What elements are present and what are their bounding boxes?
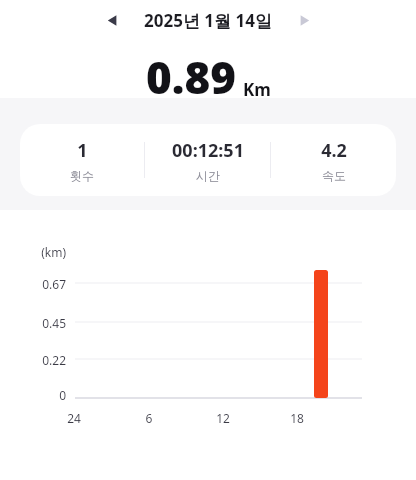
staticText: 18 xyxy=(285,410,309,426)
staticText: 0.45 xyxy=(8,315,66,331)
staticText: 00:12:51 xyxy=(172,138,244,163)
staticText: 6 xyxy=(137,410,161,426)
staticText: (km) xyxy=(8,244,66,260)
button[interactable]: Previous day xyxy=(97,5,127,35)
staticText: 0.67 xyxy=(8,276,66,292)
button[interactable]: 00:12:51 xyxy=(145,138,270,183)
button[interactable]: 1 xyxy=(20,138,144,183)
button[interactable]: 1 xyxy=(20,124,396,196)
staticText: 2025년 1월 14일 xyxy=(144,9,272,32)
staticText: 1 xyxy=(77,138,88,163)
staticText: 4.2 xyxy=(321,138,347,163)
button[interactable]: Next day xyxy=(289,5,319,35)
staticText: 시간 xyxy=(196,168,220,183)
button[interactable]: 4.2 xyxy=(271,138,396,183)
staticText: 0.89 xyxy=(146,47,237,107)
staticText: 0 xyxy=(8,387,66,403)
staticText: 횟수 xyxy=(70,168,94,183)
staticText: 12 xyxy=(211,410,235,426)
staticText: 24 xyxy=(62,410,86,426)
staticText: 속도 xyxy=(322,168,346,183)
staticText: Km xyxy=(243,78,271,101)
staticText: 0.22 xyxy=(8,352,66,368)
